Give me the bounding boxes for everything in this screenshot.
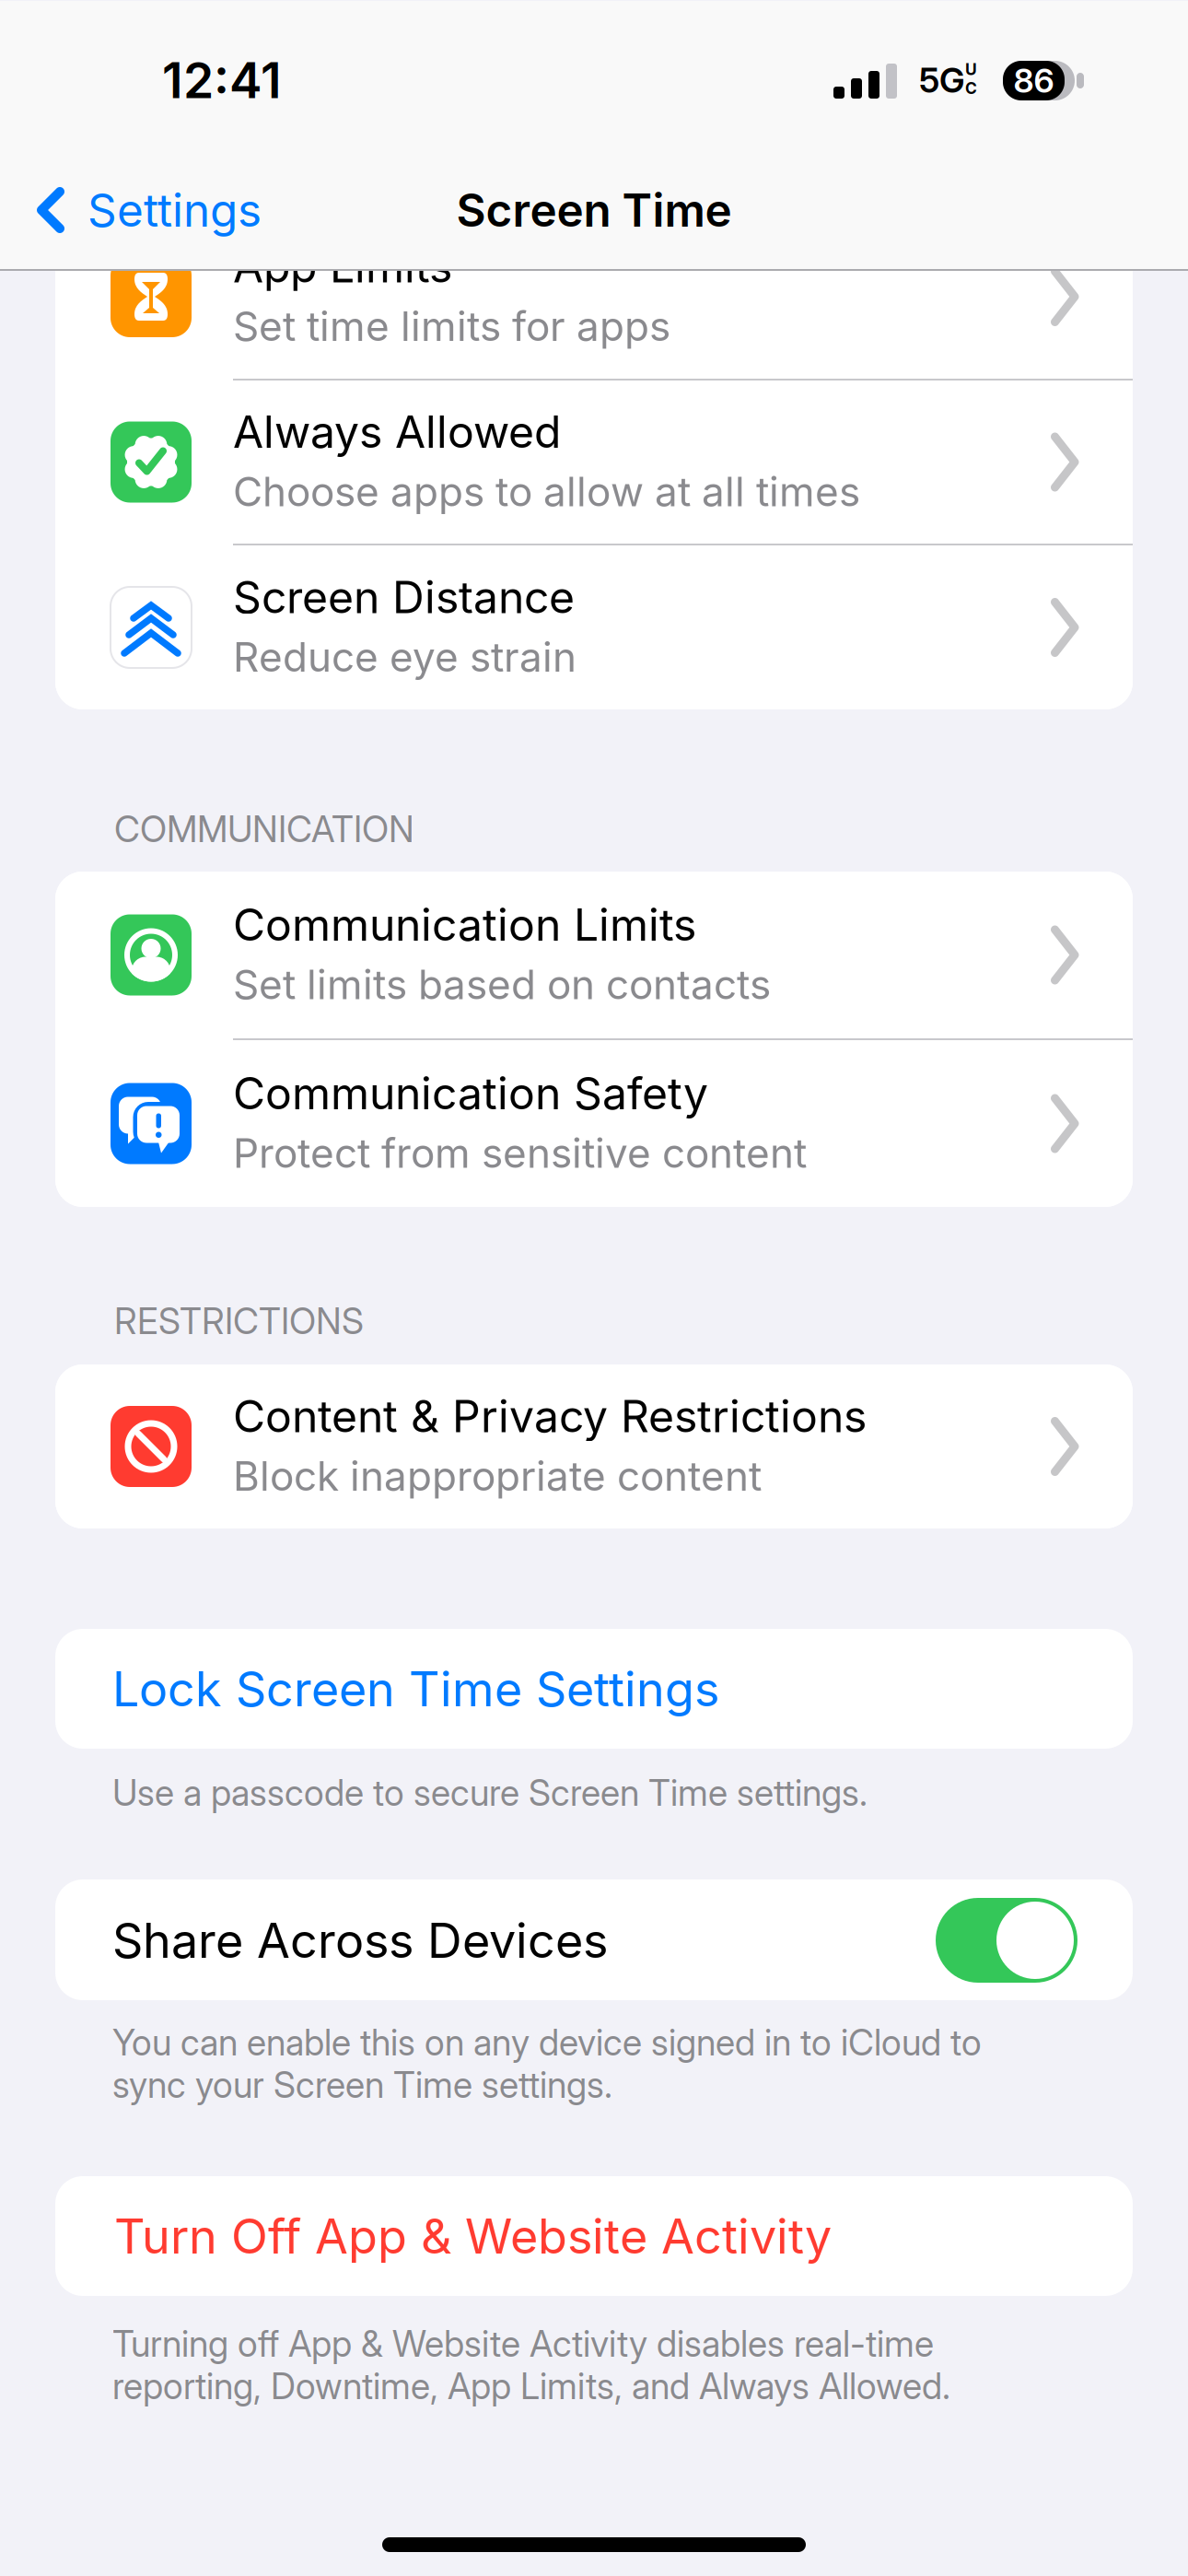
staticText: Settings bbox=[87, 183, 262, 237]
staticText: Screen Time bbox=[456, 183, 732, 237]
staticText: Turning off App & Website Activity disab… bbox=[112, 2323, 934, 2365]
button[interactable]: Lock Screen Time Settings bbox=[55, 1629, 1133, 1749]
staticText: Always Allowed bbox=[233, 406, 561, 458]
staticText: U bbox=[965, 60, 977, 79]
staticText: Share Across Devices bbox=[112, 1912, 608, 1968]
staticText: Use a passcode to secure Screen Time set… bbox=[112, 1772, 868, 1814]
staticText: RESTRICTIONS bbox=[114, 1300, 364, 1342]
staticText: Turn Off App & Website Activity bbox=[114, 2208, 832, 2264]
button[interactable]: Communication Limits bbox=[55, 872, 1133, 1038]
staticText: Communication Safety bbox=[233, 1067, 708, 1119]
staticText: 12:41 bbox=[162, 51, 282, 109]
button[interactable]: Content & Privacy Restrictions bbox=[55, 1364, 1133, 1528]
staticText: 86 bbox=[1013, 61, 1054, 100]
staticText: Lock Screen Time Settings bbox=[112, 1660, 719, 1717]
staticText: Communication Limits bbox=[233, 898, 696, 951]
staticText: C bbox=[965, 79, 977, 97]
staticText: Content & Privacy Restrictions bbox=[233, 1390, 867, 1442]
staticText: Reduce eye strain bbox=[233, 633, 577, 681]
staticText: reporting, Downtime, App Limits, and Alw… bbox=[112, 2365, 950, 2407]
staticText: COMMUNICATION bbox=[114, 808, 414, 850]
staticText: App Limits bbox=[233, 240, 452, 292]
staticText: Screen Distance bbox=[233, 571, 575, 623]
button[interactable]: Always Allowed bbox=[55, 381, 1133, 544]
staticText: Set limits based on contacts bbox=[233, 960, 771, 1008]
button[interactable]: Settings bbox=[37, 178, 262, 242]
button[interactable]: App Limits bbox=[55, 215, 1133, 379]
staticText: Protect from sensitive content bbox=[233, 1129, 807, 1177]
staticText: You can enable this on any device signed… bbox=[112, 2022, 982, 2064]
button[interactable]: Share Across Devices bbox=[55, 1879, 1133, 2000]
button[interactable]: Turn Off App & Website Activity bbox=[55, 2176, 1133, 2296]
staticText: sync your Screen Time settings. bbox=[112, 2064, 612, 2106]
staticText: Choose apps to allow at all times bbox=[233, 468, 860, 515]
staticText: 5G bbox=[919, 60, 965, 100]
staticText: Block inappropriate content bbox=[233, 1452, 762, 1500]
staticText: Set time limits for apps bbox=[233, 302, 670, 350]
button[interactable]: Communication Safety bbox=[55, 1040, 1133, 1207]
button[interactable]: Screen Distance bbox=[55, 545, 1133, 709]
